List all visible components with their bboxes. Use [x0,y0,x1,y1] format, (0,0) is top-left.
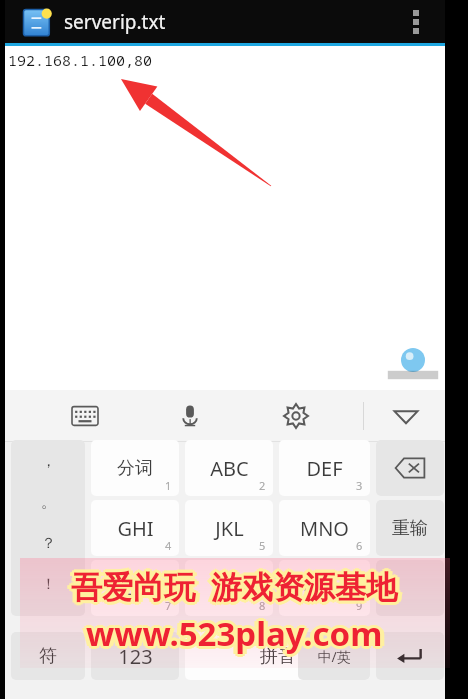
button[interactable]: 拼音 [185,632,370,680]
button[interactable]: TUV [185,560,273,616]
staticText: 中/英 [317,647,351,666]
staticText: www.523play.com [88,613,385,658]
button[interactable]: 符 [11,632,85,680]
button[interactable]: JKL [185,500,273,556]
staticText: www.523play.com [84,613,381,658]
button[interactable]: 重输 [376,500,444,556]
button[interactable]: ABC [185,440,273,496]
staticText: 拼音 [260,645,296,668]
staticText: 。 [41,493,56,512]
staticText: 吾爱尚玩 游戏资源基地 [71,562,398,604]
button[interactable]: Enter [376,632,444,680]
staticText: www.523play.com [89,611,386,656]
button[interactable]: GHI [91,500,179,556]
staticText: 吾爱尚玩 游戏资源基地 [75,565,402,607]
staticText: www.523play.com [86,611,383,656]
staticText: DEF [306,455,343,482]
staticText: 192.168.1.100,80 [8,50,153,70]
staticText: 4 [165,538,172,553]
staticText: 吾爱尚玩 游戏资源基地 [71,565,398,607]
staticText: 重输 [392,517,428,540]
button[interactable]: Backspace [376,440,444,496]
staticText: 5 [259,538,266,553]
staticText: ， [41,452,56,471]
staticText: 吾爱尚玩 游戏资源基地 [73,567,400,609]
staticText: 8 [259,598,266,613]
staticText: 吾爱尚玩 游戏资源基地 [69,567,396,609]
staticText: JKL [215,515,244,542]
button[interactable]: 123 [91,632,179,680]
staticText: ！ [41,575,56,594]
button[interactable]: More options [399,0,433,43]
button[interactable]: Settings [274,394,318,438]
staticText: www.523play.com [90,611,387,656]
staticText: 吾爱尚玩 游戏资源基地 [74,565,401,607]
staticText: 1 [165,478,172,493]
button[interactable]: 192.168.1.100,80 [5,46,445,390]
staticText: TUV [210,575,248,602]
staticText: 123 [118,643,153,670]
button[interactable]: 中/英 [298,632,370,680]
staticText: ？ [41,534,56,553]
staticText: 6 [356,538,363,553]
button[interactable]: Voice input [168,394,212,438]
staticText: 符 [39,645,57,668]
staticText: 吾爱尚玩 游戏资源基地 [73,563,400,605]
staticText: www.523play.com [83,611,380,656]
staticText: WXYZ [302,577,348,600]
staticText: 9 [356,598,363,613]
button[interactable]: DEF [279,440,370,496]
staticText: ABC [210,455,249,482]
button[interactable]: PQRS [91,560,179,616]
button[interactable]: MNO [279,500,370,556]
staticText: www.523play.com [84,609,381,654]
staticText: www.523play.com [86,608,383,653]
staticText: serverip.txt [64,9,166,35]
button[interactable]: Keyboard layout [63,394,107,438]
staticText: MNO [300,515,349,542]
staticText: 分词 [117,457,153,480]
staticText: PQRS [113,577,157,600]
staticText: 3 [356,478,363,493]
staticText: 吾爱尚玩 游戏资源基地 [68,565,395,607]
staticText: www.523play.com [82,611,379,656]
staticText: 7 [165,598,172,613]
staticText: 吾爱尚玩 游戏资源基地 [71,568,398,610]
staticText: 2 [259,478,266,493]
staticText: 吾爱尚玩 游戏资源基地 [69,563,396,605]
staticText: 吾爱尚玩 游戏资源基地 [67,565,394,607]
button[interactable]: 分词 [91,440,179,496]
button[interactable]: Hide keyboard [384,394,428,438]
staticText: www.523play.com [86,614,383,659]
staticText: GHI [117,515,154,542]
button[interactable] [376,560,444,616]
staticText: www.523play.com [88,609,385,654]
button[interactable]: WXYZ [279,560,370,616]
button[interactable]: ， [11,440,85,616]
